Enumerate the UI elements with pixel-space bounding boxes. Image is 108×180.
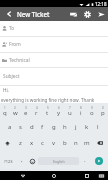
- button[interactable]: Labels: [66, 7, 80, 21]
- button[interactable]: Send: [94, 7, 108, 21]
- staticText: Technical: [9, 57, 30, 64]
- staticText: 12:18: [95, 1, 107, 7]
- staticText: 1: [4, 106, 6, 110]
- staticText: l: [97, 123, 99, 131]
- button[interactable]: From: [0, 37, 108, 53]
- staticText: x: [30, 139, 34, 147]
- staticText: e: [24, 109, 28, 117]
- button[interactable]: m: [81, 135, 92, 151]
- staticText: r: [35, 109, 38, 117]
- staticText: English: [53, 159, 65, 164]
- staticText: ,: [21, 156, 23, 164]
- staticText: p: [101, 109, 105, 117]
- staticText: k: [85, 123, 89, 131]
- button[interactable]: Enter: [90, 151, 108, 171]
- staticText: 3: [25, 106, 27, 110]
- staticText: d: [30, 123, 34, 131]
- staticText: To: [9, 25, 15, 32]
- button[interactable]: g: [48, 119, 59, 135]
- staticText: v: [52, 139, 56, 147]
- button[interactable]: d: [26, 119, 37, 135]
- button[interactable]: 6: [53, 103, 64, 119]
- staticText: a: [8, 123, 12, 131]
- button[interactable]: ?123: [0, 151, 16, 171]
- staticText: 0: [102, 106, 104, 110]
- button[interactable]: ,: [16, 151, 27, 171]
- staticText: j: [75, 123, 77, 131]
- staticText: From: [9, 41, 21, 48]
- button[interactable]: To: [0, 21, 108, 37]
- staticText: b: [63, 139, 67, 147]
- button[interactable]: s: [15, 119, 26, 135]
- button[interactable]: Backspace: [92, 135, 108, 151]
- button[interactable]: c: [37, 135, 48, 151]
- staticText: g: [52, 123, 56, 131]
- staticText: s: [19, 123, 22, 131]
- button[interactable]: Back: [2, 7, 16, 21]
- button[interactable]: Back: [16, 171, 30, 180]
- button[interactable]: Home: [47, 171, 61, 180]
- staticText: t: [46, 109, 49, 117]
- button[interactable]: Subject: [0, 68, 108, 86]
- staticText: w: [13, 109, 18, 117]
- button[interactable]: Hide keyboard: [94, 171, 108, 180]
- staticText: n: [74, 139, 78, 147]
- button[interactable]: z: [15, 135, 26, 151]
- staticText: q: [3, 109, 7, 117]
- button[interactable]: j: [70, 119, 81, 135]
- button[interactable]: Shift: [0, 135, 15, 151]
- staticText: h: [63, 123, 67, 131]
- button[interactable]: a: [4, 119, 15, 135]
- staticText: Hi,: [3, 87, 9, 93]
- staticText: o: [90, 109, 94, 117]
- button[interactable]: 7: [64, 103, 75, 119]
- staticText: y: [57, 109, 61, 117]
- button[interactable]: .: [79, 151, 90, 171]
- staticText: i: [80, 109, 82, 117]
- button[interactable]: Settings: [80, 7, 94, 21]
- staticText: everything is working fine right now. Th…: [1, 97, 95, 103]
- staticText: 6: [58, 106, 60, 110]
- staticText: 2: [14, 106, 16, 110]
- button[interactable]: Space: [38, 157, 79, 165]
- button[interactable]: f: [37, 119, 48, 135]
- button[interactable]: 2: [10, 103, 20, 119]
- staticText: u: [68, 109, 72, 117]
- staticText: c: [41, 139, 44, 147]
- button[interactable]: 4: [31, 103, 42, 119]
- button[interactable]: 5: [42, 103, 53, 119]
- staticText: .: [84, 156, 86, 164]
- staticText: New Ticket: [17, 10, 50, 18]
- staticText: Subject: [3, 73, 20, 80]
- button[interactable]: 1: [0, 103, 10, 119]
- button[interactable]: 3: [20, 103, 31, 119]
- button[interactable]: v: [48, 135, 59, 151]
- staticText: z: [19, 139, 22, 147]
- button[interactable]: 0: [97, 103, 108, 119]
- staticText: ?123: [4, 159, 13, 164]
- button[interactable]: h: [59, 119, 70, 135]
- staticText: m: [84, 139, 90, 147]
- staticText: 4: [36, 106, 38, 110]
- staticText: f: [41, 123, 44, 131]
- button[interactable]: Technical: [0, 53, 108, 68]
- staticText: 8: [80, 106, 82, 110]
- button[interactable]: n: [70, 135, 81, 151]
- button[interactable]: b: [59, 135, 70, 151]
- button[interactable]: 9: [86, 103, 97, 119]
- button[interactable]: l: [92, 119, 103, 135]
- staticText: 5: [47, 106, 49, 110]
- button[interactable]: k: [81, 119, 92, 135]
- staticText: 7: [69, 106, 71, 110]
- button[interactable]: Emoji: [27, 151, 38, 171]
- button[interactable]: Recent apps: [80, 171, 94, 180]
- button[interactable]: 8: [75, 103, 86, 119]
- button[interactable]: x: [26, 135, 37, 151]
- staticText: 9: [91, 106, 93, 110]
